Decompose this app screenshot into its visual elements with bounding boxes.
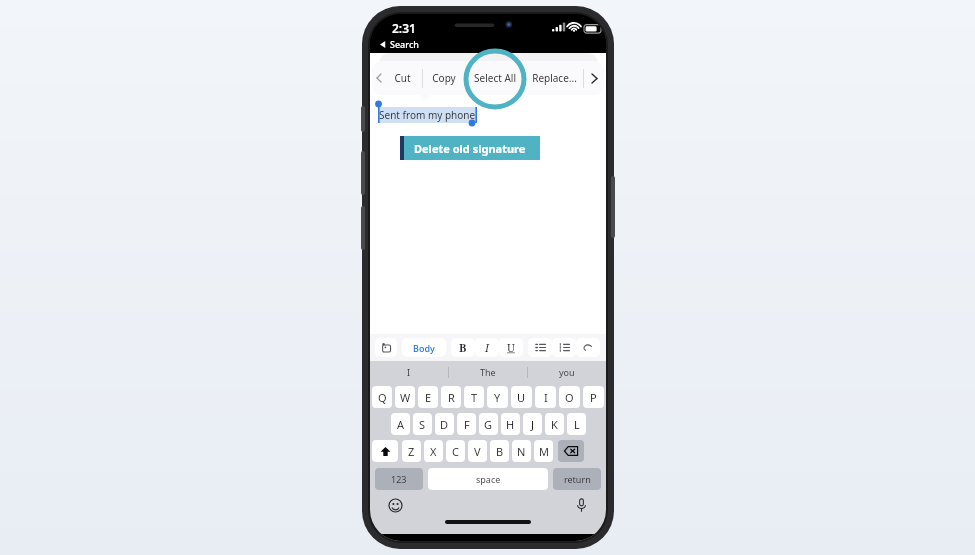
staticText: B bbox=[459, 340, 467, 355]
staticText: The bbox=[480, 366, 496, 378]
button[interactable]: Numbered list bbox=[552, 338, 576, 357]
button[interactable]: T bbox=[464, 386, 484, 408]
staticText: Sent from my phone bbox=[379, 108, 476, 122]
staticText: M bbox=[539, 444, 549, 459]
button[interactable]: Shift bbox=[372, 440, 398, 462]
staticText: Q bbox=[378, 390, 387, 405]
button[interactable]: A bbox=[391, 413, 410, 435]
button[interactable]: X bbox=[424, 440, 443, 462]
staticText: L bbox=[574, 417, 580, 432]
button[interactable]: D bbox=[435, 413, 454, 435]
button[interactable]: P bbox=[583, 386, 604, 408]
button[interactable]: N bbox=[512, 440, 531, 462]
staticText: Copy bbox=[432, 71, 456, 85]
staticText: S bbox=[419, 417, 426, 432]
button[interactable]: U bbox=[511, 386, 532, 408]
button[interactable]: Indent bbox=[576, 338, 600, 357]
staticText: you bbox=[559, 366, 575, 378]
button[interactable]: The bbox=[449, 361, 527, 383]
staticText: return bbox=[564, 473, 591, 485]
button[interactable]: H bbox=[501, 413, 520, 435]
staticText: W bbox=[400, 390, 411, 405]
staticText: D bbox=[440, 417, 449, 432]
staticText: C bbox=[452, 444, 459, 459]
staticText: A bbox=[397, 417, 405, 432]
button[interactable]: Cut bbox=[383, 61, 422, 95]
staticText: Replace... bbox=[532, 71, 577, 85]
button[interactable]: Underline bbox=[499, 338, 523, 357]
staticText: K bbox=[551, 417, 558, 432]
button[interactable]: space bbox=[428, 468, 548, 490]
staticText: Z bbox=[408, 444, 415, 459]
button[interactable]: Delete old signature bbox=[400, 136, 540, 160]
button[interactable]: V bbox=[468, 440, 487, 462]
staticText: I bbox=[485, 340, 490, 355]
staticText: X bbox=[430, 444, 437, 459]
staticText: O bbox=[565, 390, 574, 405]
staticText: Cut bbox=[394, 71, 411, 85]
button[interactable]: Emoji bbox=[386, 496, 404, 514]
button[interactable]: More bbox=[584, 61, 604, 95]
staticText: U bbox=[507, 340, 515, 355]
staticText: V bbox=[474, 444, 481, 459]
button[interactable]: 123 bbox=[375, 468, 423, 490]
button[interactable]: Z bbox=[402, 440, 421, 462]
button[interactable]: Replace... bbox=[525, 61, 583, 95]
staticText: 123 bbox=[391, 473, 407, 485]
button[interactable]: E bbox=[418, 386, 438, 408]
staticText: I bbox=[407, 366, 411, 378]
button[interactable]: Bold bbox=[451, 338, 475, 357]
button[interactable]: Copy bbox=[423, 61, 465, 95]
staticText: F bbox=[464, 417, 470, 432]
button[interactable]: Previous bbox=[375, 61, 383, 95]
staticText: I bbox=[544, 390, 548, 405]
button[interactable]: M bbox=[534, 440, 553, 462]
button[interactable]: S bbox=[413, 413, 432, 435]
button[interactable]: Q bbox=[372, 386, 392, 408]
button[interactable]: W bbox=[395, 386, 415, 408]
button[interactable]: I bbox=[370, 361, 448, 383]
staticText: H bbox=[506, 417, 515, 432]
button[interactable]: Dictation bbox=[572, 496, 590, 514]
button[interactable]: Bulleted list bbox=[528, 338, 552, 357]
staticText: N bbox=[517, 444, 526, 459]
button[interactable]: C bbox=[446, 440, 465, 462]
button[interactable]: return bbox=[553, 468, 601, 490]
button[interactable]: Insert photo bbox=[375, 338, 397, 357]
button[interactable]: I bbox=[535, 386, 556, 408]
button[interactable]: G bbox=[479, 413, 498, 435]
staticText: T bbox=[471, 390, 478, 405]
staticText: B bbox=[496, 444, 504, 459]
staticText: U bbox=[517, 390, 526, 405]
staticText: space bbox=[476, 473, 501, 485]
staticText: R bbox=[448, 390, 455, 405]
button[interactable]: B bbox=[490, 440, 509, 462]
staticText: 2:31 bbox=[392, 20, 416, 36]
staticText: Y bbox=[494, 390, 501, 405]
staticText: Select All bbox=[474, 71, 516, 85]
staticText: Body bbox=[413, 342, 435, 354]
button[interactable]: R bbox=[441, 386, 461, 408]
button[interactable]: Y bbox=[487, 386, 508, 408]
button[interactable]: Body bbox=[402, 338, 446, 357]
staticText: J bbox=[531, 417, 535, 432]
button[interactable]: you bbox=[528, 361, 606, 383]
button[interactable]: L bbox=[567, 413, 586, 435]
button[interactable]: K bbox=[545, 413, 564, 435]
button[interactable]: F bbox=[457, 413, 476, 435]
staticText: E bbox=[425, 390, 432, 405]
button[interactable]: Backspace bbox=[558, 440, 584, 462]
button[interactable]: Select All bbox=[466, 61, 524, 95]
button[interactable]: Search bbox=[380, 38, 419, 50]
button[interactable]: O bbox=[559, 386, 580, 408]
staticText: G bbox=[484, 417, 493, 432]
staticText: P bbox=[590, 390, 597, 405]
button[interactable]: J bbox=[523, 413, 542, 435]
staticText: Search bbox=[390, 38, 419, 50]
staticText: Delete old signature bbox=[414, 141, 526, 156]
button[interactable]: Italic bbox=[475, 338, 499, 357]
